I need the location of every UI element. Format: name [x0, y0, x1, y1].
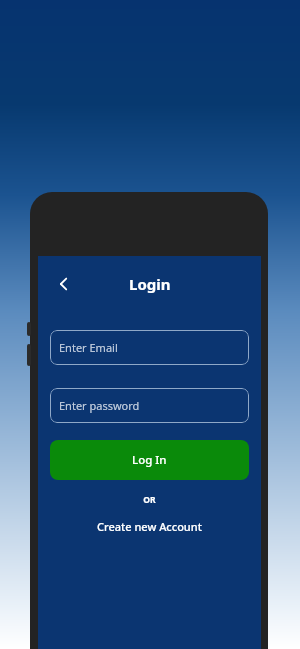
button[interactable]: Enter password: [50, 388, 249, 423]
staticText: Enter password: [59, 398, 140, 413]
staticText: Log In: [132, 452, 167, 468]
staticText: Enter Email: [59, 340, 118, 355]
button[interactable]: Enter Email: [50, 330, 249, 365]
staticText: Create new Account: [97, 519, 202, 534]
staticText: Login: [129, 274, 171, 294]
staticText: OR: [38, 494, 261, 506]
button[interactable]: Back: [46, 266, 82, 302]
button[interactable]: Log In: [50, 440, 249, 480]
button[interactable]: Create new Account: [38, 516, 261, 537]
